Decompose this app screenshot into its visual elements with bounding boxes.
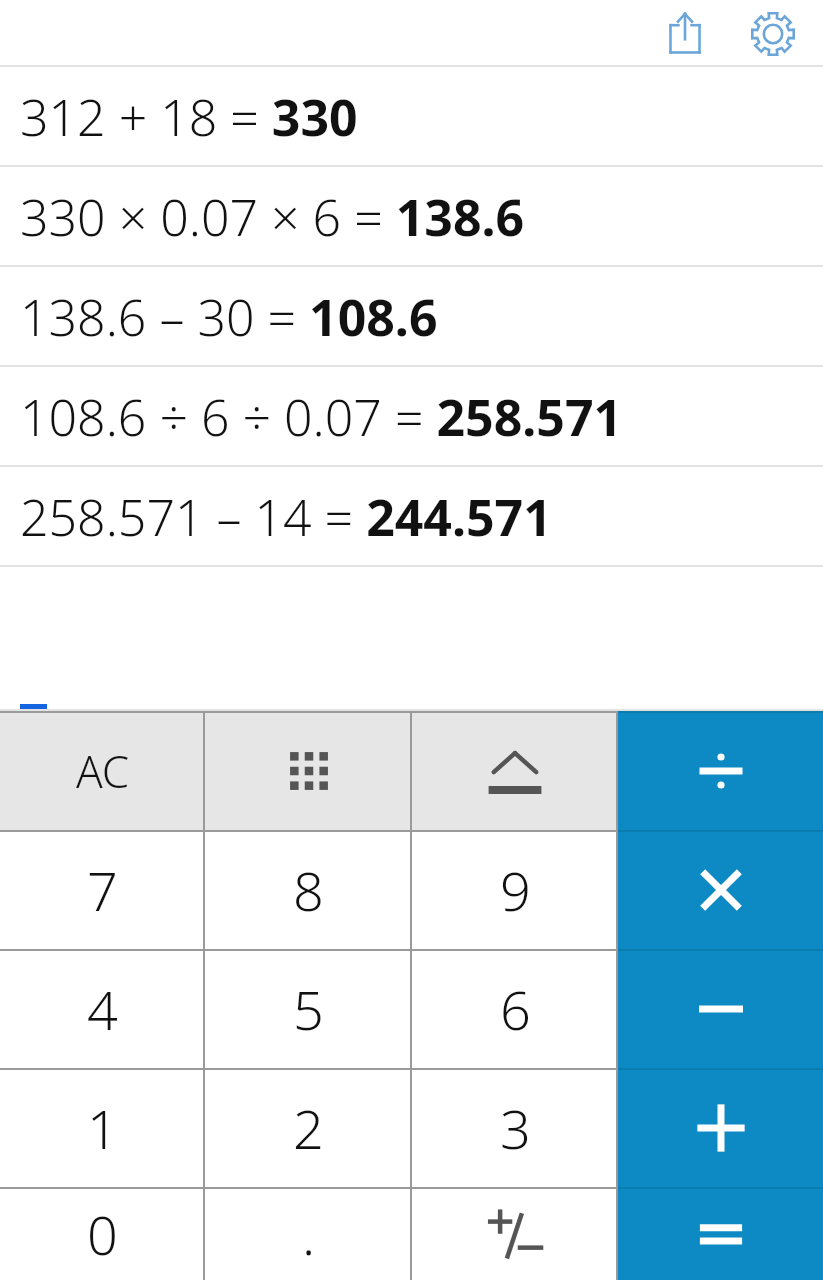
button[interactable]: 9 — [412, 830, 618, 949]
staticText: 4 — [87, 972, 118, 1046]
button[interactable]: 8 — [205, 830, 412, 949]
button[interactable]: 4 — [0, 949, 205, 1068]
staticText: 2 — [293, 1091, 324, 1165]
staticText: 108.6 ÷ 6 ÷ 0.07 = 258.571 — [20, 383, 623, 451]
staticText: . — [302, 1197, 316, 1271]
button[interactable]: 108.6 ÷ 6 ÷ 0.07 = 258.571 — [0, 367, 823, 467]
staticText: 3 — [500, 1091, 531, 1165]
staticText: 330 × 0.07 × 6 = 138.6 — [20, 183, 525, 251]
button[interactable]: . — [205, 1187, 412, 1280]
button[interactable]: Settings — [741, 2, 805, 66]
button[interactable]: Equals — [618, 1187, 823, 1280]
staticText: AC — [76, 741, 130, 801]
button[interactable]: 2 — [205, 1068, 412, 1187]
staticText: 8 — [293, 853, 324, 927]
button[interactable]: Multiply — [618, 830, 823, 949]
button[interactable]: Add — [618, 1068, 823, 1187]
button[interactable]: 0 — [0, 1187, 205, 1280]
staticText: 7 — [87, 853, 118, 927]
button[interactable] — [0, 567, 823, 711]
staticText: 0 — [87, 1197, 118, 1271]
staticText: 312 + 18 = 330 — [20, 83, 358, 151]
button[interactable]: Collapse — [412, 711, 618, 830]
button[interactable]: 258.571 – 14 = 244.571 — [0, 467, 823, 567]
button[interactable]: 138.6 – 30 = 108.6 — [0, 267, 823, 367]
button[interactable]: Sign — [412, 1187, 618, 1280]
staticText: 138.6 – 30 = 108.6 — [20, 283, 438, 351]
button[interactable]: Keypad — [205, 711, 412, 830]
button[interactable]: 3 — [412, 1068, 618, 1187]
button[interactable]: 312 + 18 = 330 — [0, 67, 823, 167]
button[interactable]: 6 — [412, 949, 618, 1068]
button[interactable]: AC — [0, 711, 205, 830]
button[interactable]: 7 — [0, 830, 205, 949]
button[interactable]: 1 — [0, 1068, 205, 1187]
staticText: 9 — [500, 853, 531, 927]
staticText: 258.571 – 14 = 244.571 — [20, 483, 552, 551]
button[interactable]: Share — [653, 2, 717, 66]
staticText: 1 — [87, 1091, 118, 1165]
button[interactable]: 5 — [205, 949, 412, 1068]
staticText: 5 — [293, 972, 324, 1046]
button[interactable]: Subtract — [618, 949, 823, 1068]
staticText: 6 — [500, 972, 531, 1046]
button[interactable]: 330 × 0.07 × 6 = 138.6 — [0, 167, 823, 267]
button[interactable]: Divide — [618, 711, 823, 830]
